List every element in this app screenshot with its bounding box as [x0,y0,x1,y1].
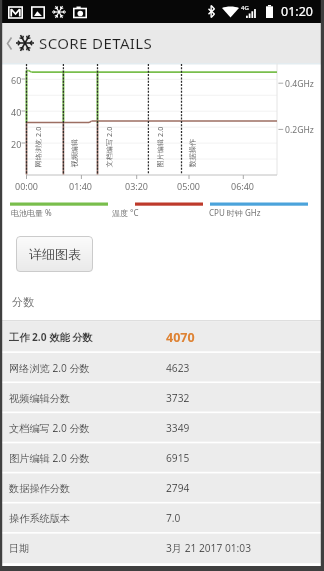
staticText: 视频编辑分数 [9,392,71,405]
button[interactable]: 日期 [0,533,324,563]
staticText: 工作 2.0 效能 分数 [9,330,93,344]
staticText: 03:20 [125,180,149,192]
staticText: 3349 [166,421,190,435]
staticText: 文档编写 2.0 分数 [9,421,90,435]
staticText: 视频编辑 [69,138,78,167]
staticText: 01:20 [281,3,313,20]
staticText: 操作系统版本 [9,512,71,525]
staticText: 2794 [166,481,190,495]
staticText: 0.4GHz [285,78,314,90]
staticText: 3月 21 2017 01:03 [166,541,251,555]
staticText: 4G [241,4,249,12]
button[interactable]: 数据操作分数 [0,473,324,503]
staticText: 数据操作 [187,138,196,167]
staticText: 图片编辑 2.0 [154,126,163,167]
staticText: 文档编写 2.0 [103,126,112,167]
staticText: 6915 [166,451,190,465]
button[interactable]: 操作系统版本 [0,503,324,533]
staticText: 4623 [166,361,190,375]
staticText: 06:40 [231,180,255,192]
staticText: SCORE DETAILS [39,33,153,53]
staticText: 图片编辑 2.0 分数 [9,451,90,465]
button[interactable]: 详细图表 [16,236,93,272]
button[interactable]: 工作 2.0 效能 分数 [0,322,324,352]
staticText: 电池电量 % [11,207,52,218]
button[interactable]: 文档编写 2.0 分数 [0,413,324,443]
staticText: 温度 °C [112,207,139,218]
staticText: CPU 时钟 GHz [209,207,261,218]
staticText: 网络浏览 2.0 [32,126,41,167]
staticText: 00:00 [15,180,39,192]
staticText: 网络浏览 2.0 分数 [9,361,90,375]
staticText: 05:00 [177,180,201,192]
staticText: 20 [11,138,22,150]
staticText: 3732 [166,391,190,405]
staticText: 数据操作分数 [9,482,71,495]
button[interactable]: 视频编辑分数 [0,383,324,413]
button[interactable]: 网络浏览 2.0 分数 [0,353,324,383]
staticText: 60 [11,74,22,86]
button[interactable]: 图片编辑 2.0 分数 [0,443,324,473]
staticText: 4070 [166,329,195,346]
staticText: 分数 [12,295,34,309]
staticText: 日期 [9,542,30,555]
staticText: 01:40 [69,180,93,192]
staticText: 详细图表 [29,246,81,262]
staticText: 7.0 [166,511,181,525]
staticText: 40 [11,106,22,118]
staticText: 0.2GHz [285,124,314,136]
button[interactable]: Back [4,31,14,55]
